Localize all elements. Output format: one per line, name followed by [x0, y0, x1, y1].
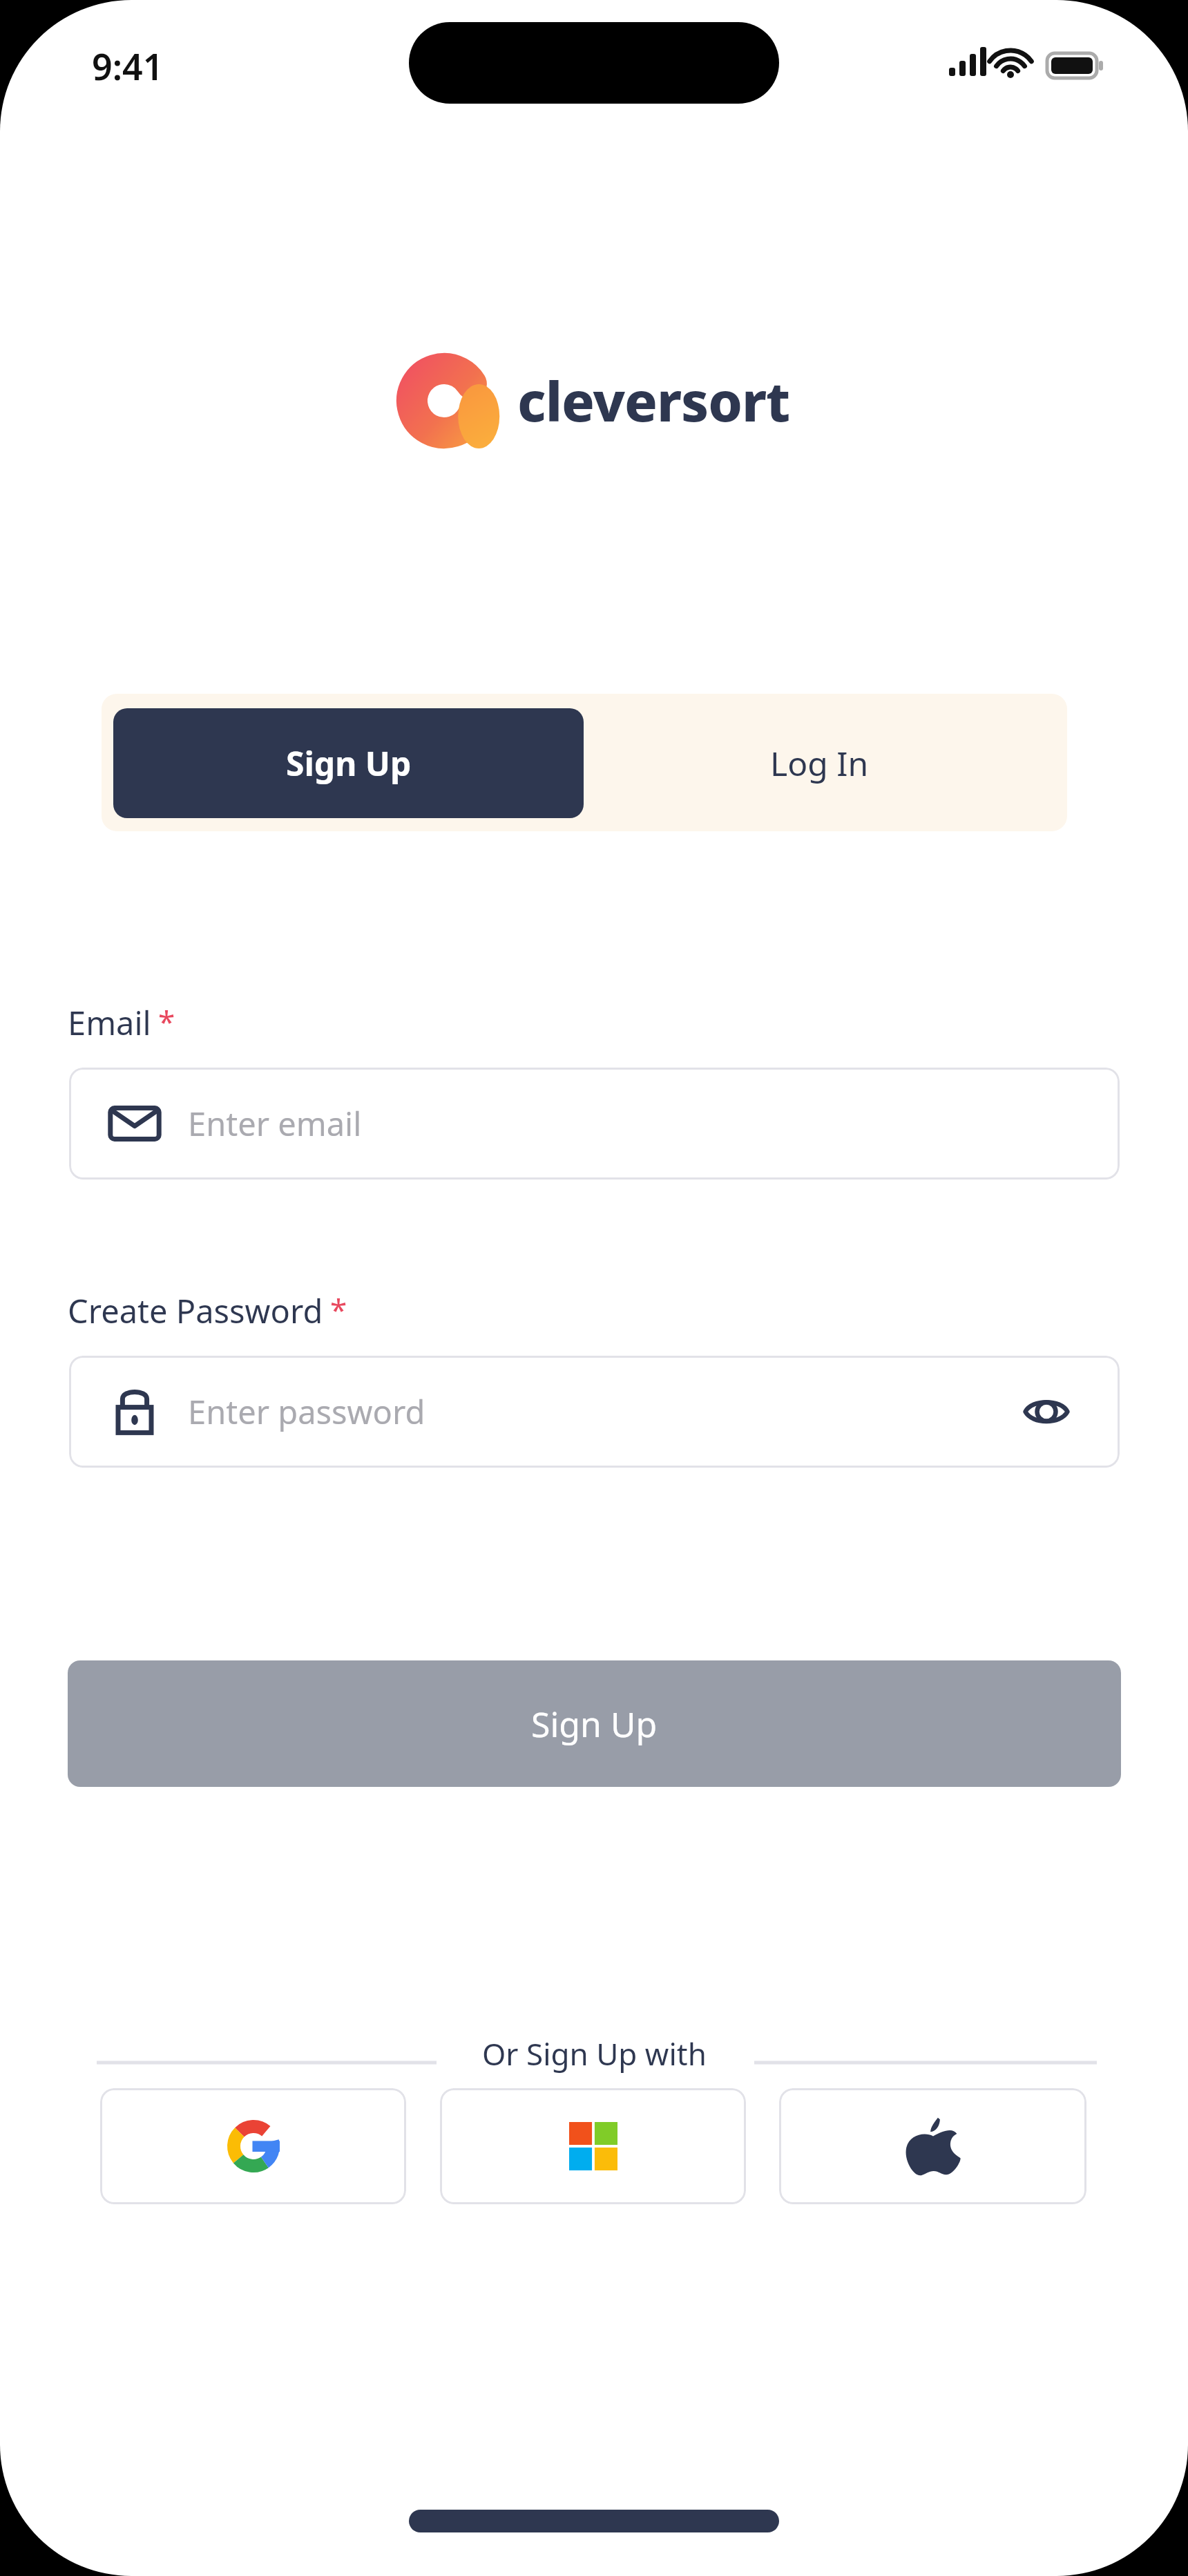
button[interactable]: Sign up with Microsoft: [440, 2088, 746, 2204]
button[interactable]: Sign up with Google: [100, 2088, 406, 2204]
button[interactable]: Log In: [584, 708, 1055, 818]
button[interactable]: Sign Up: [68, 1660, 1121, 1787]
staticText: 9:41: [92, 41, 164, 91]
button[interactable]: Sign up with Apple: [779, 2088, 1086, 2204]
staticText: Log In: [770, 741, 869, 786]
button[interactable]: Sign Up: [113, 708, 584, 818]
staticText: Email: [68, 1001, 151, 1045]
staticText: cleversort: [517, 363, 790, 438]
staticText: Sign Up: [286, 741, 412, 786]
button[interactable]: Show password: [1013, 1379, 1080, 1445]
staticText: Or Sign Up with: [482, 2033, 707, 2074]
button[interactable]: Enter email: [69, 1068, 1120, 1180]
staticText: *: [158, 1001, 175, 1042]
staticText: Create Password: [68, 1289, 323, 1333]
staticText: *: [330, 1289, 347, 1330]
staticText: Sign Up: [531, 1701, 658, 1748]
staticText: Enter email: [188, 1101, 362, 1146]
staticText: Enter password: [188, 1390, 425, 1434]
button[interactable]: Enter password: [69, 1356, 1120, 1468]
